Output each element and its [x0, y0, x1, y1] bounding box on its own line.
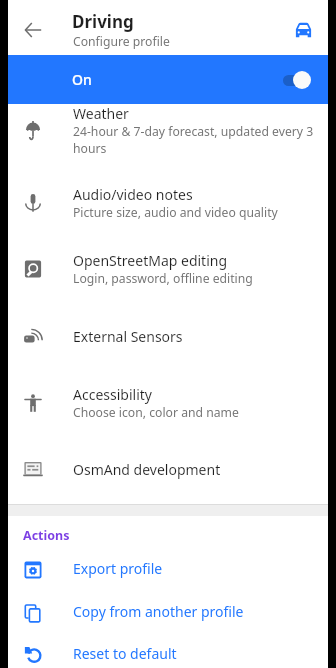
staticText: Audio/video notes — [73, 185, 193, 204]
button[interactable]: Reset to default — [8, 635, 328, 668]
button[interactable]: OpenStreetMap editing — [8, 241, 328, 297]
staticText: Reset to default — [73, 644, 177, 663]
button[interactable]: Back — [9, 6, 57, 54]
staticText: OsmAnd development — [73, 460, 221, 479]
button[interactable]: Export profile — [8, 550, 328, 586]
staticText: External Sensors — [73, 327, 183, 346]
staticText: Export profile — [73, 559, 163, 578]
staticText: 24-hour & 7-day forecast, updated every … — [73, 123, 316, 157]
staticText: Copy from another profile — [73, 602, 244, 621]
staticText: Login, password, offline editing — [73, 270, 253, 287]
button[interactable]: Copy from another profile — [8, 593, 328, 629]
staticText: Configure profile — [73, 33, 170, 50]
button[interactable]: Accessibility — [8, 375, 328, 431]
staticText: OpenStreetMap editing — [73, 251, 228, 270]
staticText: Picture size, audio and video quality — [73, 204, 278, 221]
staticText: Weather — [73, 104, 129, 123]
button[interactable]: External Sensors — [8, 318, 328, 354]
button[interactable]: On — [8, 55, 328, 104]
staticText: On — [72, 70, 92, 89]
button[interactable]: Weather — [8, 102, 328, 158]
button[interactable]: OsmAnd development — [8, 451, 328, 487]
staticText: Actions — [23, 527, 70, 544]
button[interactable]: Driving profile — [279, 6, 327, 54]
button[interactable]: Audio/video notes — [8, 175, 328, 231]
staticText: Driving — [72, 10, 134, 33]
staticText: Accessibility — [73, 385, 152, 404]
staticText: Choose icon, color and name — [73, 404, 239, 421]
